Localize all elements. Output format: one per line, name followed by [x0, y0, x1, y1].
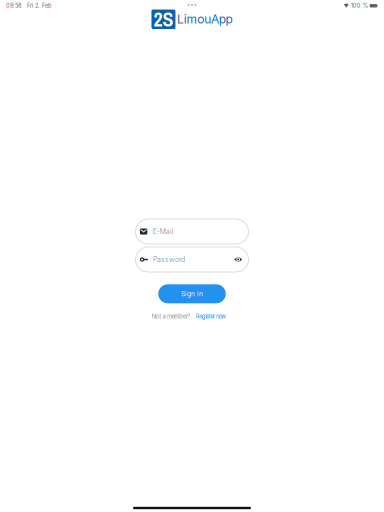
- staticText: E-Mail: [153, 227, 174, 236]
- button[interactable]: Register now: [196, 313, 226, 320]
- button[interactable]: Multitasking controls: [182, 2, 202, 7]
- staticText: Password: [153, 255, 185, 264]
- staticText: Fri 2. Feb: [21, 2, 51, 9]
- staticText: LimouApp: [177, 12, 233, 26]
- button[interactable]: Sign in: [158, 284, 226, 303]
- staticText: 100 %: [349, 2, 370, 9]
- staticText: 09:58: [6, 2, 21, 9]
- staticText: Register now: [196, 313, 226, 320]
- staticText: Not a member?: [152, 313, 190, 320]
- staticText: 2S: [153, 6, 173, 33]
- button[interactable]: Show password: [234, 253, 243, 265]
- staticText: Sign in: [181, 290, 203, 298]
